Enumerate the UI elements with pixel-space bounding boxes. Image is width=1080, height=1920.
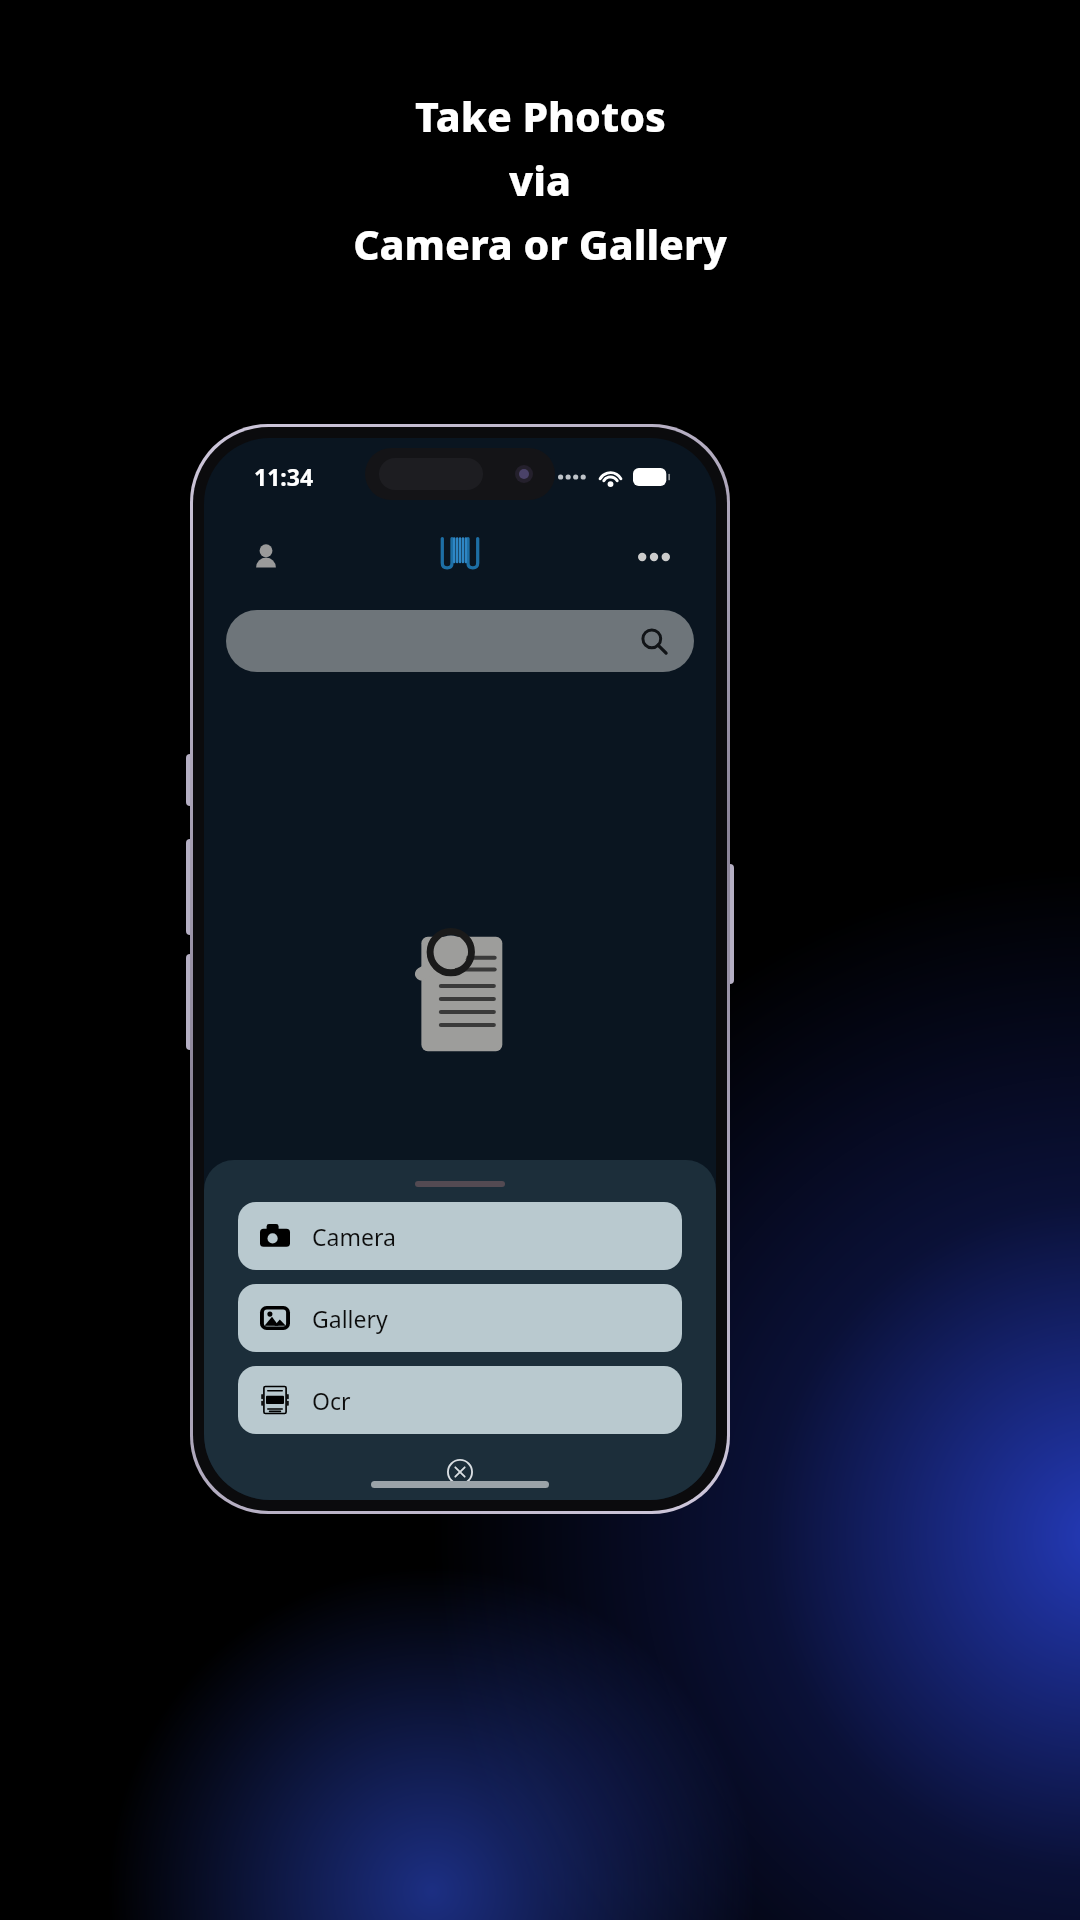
staticText: Camera or Gallery xyxy=(353,216,727,272)
button[interactable]: Close xyxy=(438,1450,482,1494)
staticText: via xyxy=(509,152,571,208)
staticText: Ocr xyxy=(312,1385,351,1416)
button[interactable]: Camera xyxy=(238,1202,682,1270)
button[interactable]: Profile xyxy=(240,531,292,583)
staticText: Gallery xyxy=(312,1303,388,1334)
button[interactable]: More options xyxy=(628,531,680,583)
staticText: Take Photos xyxy=(415,88,666,144)
staticText: Camera xyxy=(312,1221,396,1252)
button[interactable]: Search xyxy=(226,610,694,672)
button[interactable]: Gallery xyxy=(238,1284,682,1352)
staticText: 11:34 xyxy=(254,461,314,492)
button[interactable]: Ocr xyxy=(238,1366,682,1434)
